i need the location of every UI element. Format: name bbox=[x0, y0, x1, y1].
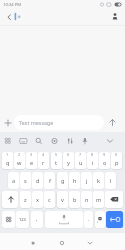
button[interactable]: 4 bbox=[38, 152, 49, 169]
button[interactable]: 0 bbox=[111, 152, 122, 169]
staticText: x bbox=[36, 196, 39, 204]
button[interactable] bbox=[108, 10, 122, 23]
staticText: h bbox=[73, 177, 77, 185]
button[interactable] bbox=[55, 236, 69, 249]
staticText: . bbox=[88, 215, 90, 223]
staticText: f bbox=[49, 177, 51, 185]
staticText: q bbox=[6, 159, 10, 167]
button[interactable] bbox=[45, 211, 83, 228]
staticText: 5 bbox=[55, 152, 58, 157]
staticText: , bbox=[36, 215, 38, 223]
staticText: 10:34 PM bbox=[3, 2, 22, 8]
button[interactable] bbox=[106, 211, 123, 228]
button[interactable]: 123 bbox=[16, 211, 29, 228]
button[interactable]: d bbox=[32, 172, 43, 189]
staticText: 7 bbox=[79, 152, 82, 157]
staticText: i bbox=[92, 159, 94, 167]
staticText: s bbox=[24, 177, 27, 185]
button[interactable]: v bbox=[57, 191, 68, 208]
staticText: k bbox=[97, 177, 100, 185]
staticText: v bbox=[61, 196, 64, 204]
button[interactable]: , bbox=[31, 211, 43, 228]
staticText: 2 bbox=[18, 152, 21, 157]
button[interactable]: 8 bbox=[87, 152, 98, 169]
staticText: p bbox=[115, 159, 119, 167]
button[interactable]: g bbox=[57, 172, 68, 189]
button[interactable]: 9 bbox=[99, 152, 110, 169]
button[interactable]: 2 bbox=[14, 152, 25, 169]
staticText: o bbox=[103, 159, 107, 167]
staticText: 123 bbox=[19, 217, 26, 222]
button[interactable] bbox=[2, 191, 18, 208]
staticText: Text message bbox=[19, 119, 54, 126]
button[interactable] bbox=[105, 115, 121, 130]
staticText: b bbox=[73, 196, 77, 204]
button[interactable]: Text message bbox=[14, 115, 104, 130]
staticText: 1 bbox=[6, 152, 9, 157]
button[interactable] bbox=[105, 191, 123, 208]
button[interactable]: k bbox=[93, 172, 104, 189]
button[interactable]: j bbox=[81, 172, 92, 189]
button[interactable]: 1 bbox=[2, 152, 13, 169]
button[interactable]: l bbox=[105, 172, 116, 189]
staticText: c bbox=[48, 196, 51, 204]
staticText: u bbox=[79, 159, 83, 167]
staticText: 6 bbox=[67, 152, 70, 157]
staticText: y bbox=[67, 159, 70, 167]
staticText: 4 bbox=[42, 152, 45, 157]
staticText: g bbox=[61, 177, 65, 185]
staticText: d bbox=[36, 177, 40, 185]
staticText: z bbox=[24, 196, 27, 204]
staticText: 0 bbox=[115, 152, 118, 157]
button[interactable]: s bbox=[20, 172, 31, 189]
button[interactable]: 7 bbox=[75, 152, 86, 169]
staticText: l bbox=[110, 177, 112, 185]
button[interactable]: x bbox=[32, 191, 43, 208]
button[interactable]: 6 bbox=[63, 152, 74, 169]
button[interactable]: 5 bbox=[51, 152, 62, 169]
button[interactable]: z bbox=[20, 191, 31, 208]
button[interactable]: b bbox=[69, 191, 80, 208]
button[interactable]: h bbox=[69, 172, 80, 189]
staticText: j bbox=[86, 177, 88, 185]
staticText: 8 bbox=[91, 152, 94, 157]
button[interactable]: f bbox=[44, 172, 55, 189]
button[interactable]: m bbox=[93, 191, 104, 208]
button[interactable] bbox=[83, 236, 97, 249]
button[interactable]: a bbox=[8, 172, 19, 189]
staticText: 9 bbox=[103, 152, 106, 157]
staticText: a bbox=[12, 177, 16, 185]
button[interactable] bbox=[2, 10, 16, 24]
button[interactable]: c bbox=[44, 191, 55, 208]
staticText: t bbox=[55, 159, 58, 167]
button[interactable] bbox=[2, 211, 15, 228]
staticText: w bbox=[17, 159, 22, 167]
button[interactable] bbox=[95, 211, 105, 228]
staticText: 3 bbox=[30, 152, 33, 157]
staticText: r bbox=[42, 159, 45, 167]
button[interactable] bbox=[26, 236, 40, 249]
button[interactable]: . bbox=[84, 211, 93, 228]
staticText: e bbox=[30, 159, 34, 167]
staticText: n bbox=[85, 196, 89, 204]
button[interactable]: 3 bbox=[26, 152, 37, 169]
staticText: m bbox=[96, 196, 102, 204]
button[interactable]: n bbox=[81, 191, 92, 208]
button[interactable] bbox=[2, 116, 14, 130]
